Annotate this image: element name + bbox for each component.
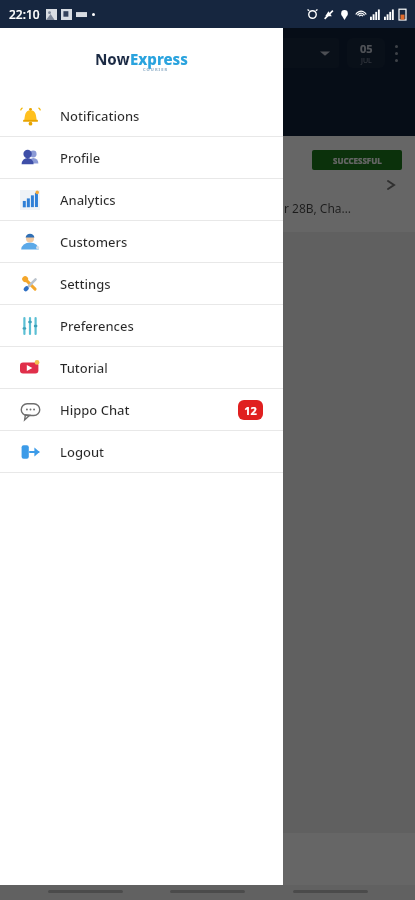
button[interactable]: Hippo Chat	[0, 389, 283, 430]
staticText: 12	[244, 403, 257, 418]
button[interactable]: Profile	[0, 137, 283, 178]
staticText: Settings	[60, 275, 111, 293]
staticText: Express	[130, 49, 188, 69]
staticText: Customers	[60, 233, 128, 251]
staticText: Hippo Chat	[60, 401, 130, 419]
button[interactable]: Tutorial	[0, 347, 283, 388]
button[interactable]: Notifications	[0, 95, 283, 136]
staticText: JUL	[361, 56, 372, 66]
staticText: e Task	[158, 45, 193, 61]
button[interactable]: Logout	[0, 431, 283, 472]
staticText: SUCCESSFUL	[333, 155, 382, 166]
button[interactable]: SUCCESSFUL	[312, 150, 402, 170]
button[interactable]: AGENT	[0, 833, 415, 885]
button[interactable]: Customers	[0, 221, 283, 262]
button[interactable]: Preferences	[0, 305, 283, 346]
staticText: C O U R I E R	[143, 67, 168, 72]
button[interactable]: Analytics	[0, 179, 283, 220]
staticText: 05	[360, 41, 373, 56]
staticText: 22:10	[9, 6, 40, 22]
button[interactable]: e Task	[150, 38, 339, 68]
button[interactable]: More options	[385, 38, 407, 68]
staticText: Logout	[60, 443, 105, 461]
staticText: Tutorial	[60, 359, 108, 377]
staticText: Notifications	[60, 107, 140, 125]
button[interactable]: 05	[347, 38, 385, 68]
staticText: r 28B, Cha…	[284, 200, 352, 216]
staticText: Now	[95, 49, 130, 69]
button[interactable]: Settings	[0, 263, 283, 304]
staticText: Analytics	[60, 191, 116, 209]
staticText: Profile	[60, 149, 101, 167]
staticText: Preferences	[60, 317, 134, 335]
